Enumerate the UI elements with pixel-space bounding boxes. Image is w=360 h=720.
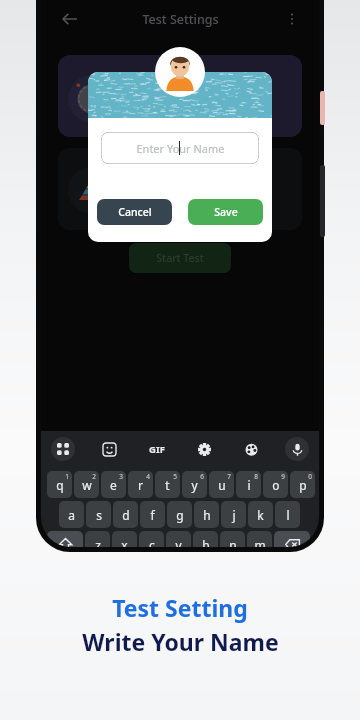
- staticText: q: [56, 477, 64, 493]
- button[interactable]: Set Test Time: [58, 55, 302, 137]
- staticText: Minute: [169, 107, 203, 121]
- staticText: 6: [200, 472, 204, 481]
- button[interactable]: j: [221, 501, 246, 528]
- button[interactable]: Save: [188, 199, 263, 225]
- button[interactable]: Switch keyboard: [51, 437, 75, 461]
- button[interactable]: Enter Your Name: [101, 132, 259, 164]
- staticText: a: [68, 507, 75, 523]
- staticText: 8: [254, 472, 258, 481]
- staticText: y: [191, 477, 198, 493]
- staticText: Test Setting: [112, 592, 248, 623]
- button[interactable]: Settings: [192, 437, 216, 461]
- staticText: x: [121, 537, 128, 547]
- button[interactable]: d: [113, 501, 138, 528]
- button[interactable]: w: [74, 471, 99, 498]
- button[interactable]: q: [47, 471, 72, 498]
- staticText: l: [286, 507, 290, 523]
- button[interactable]: GIF: [144, 436, 170, 462]
- staticText: 1: [65, 472, 69, 481]
- button[interactable]: y: [182, 471, 207, 498]
- button[interactable]: Voice input: [285, 437, 309, 461]
- button[interactable]: l: [275, 501, 300, 528]
- staticText: k: [257, 507, 264, 523]
- button[interactable]: k: [248, 501, 273, 528]
- staticText: 5: [173, 472, 177, 481]
- staticText: Cancel: [118, 205, 152, 219]
- button[interactable]: More options: [279, 6, 305, 32]
- button[interactable]: Stickers: [97, 437, 121, 461]
- button[interactable]: v: [166, 531, 191, 547]
- button[interactable]: Back: [55, 5, 83, 33]
- button[interactable]: [58, 148, 302, 230]
- staticText: g: [176, 507, 184, 523]
- staticText: Write Your Name: [82, 626, 279, 657]
- staticText: i: [247, 477, 251, 493]
- staticText: j: [232, 507, 236, 523]
- staticText: 2: [92, 472, 96, 481]
- staticText: f: [150, 507, 155, 523]
- button[interactable]: i: [236, 471, 261, 498]
- button[interactable]: x: [112, 531, 137, 547]
- button[interactable]: Themes: [239, 437, 263, 461]
- button[interactable]: Backspace: [274, 531, 310, 547]
- button[interactable]: f: [140, 501, 165, 528]
- button[interactable]: n: [220, 531, 245, 547]
- staticText: v: [175, 537, 182, 547]
- staticText: r: [138, 477, 143, 493]
- staticText: c: [149, 537, 155, 547]
- button[interactable]: g: [167, 501, 192, 528]
- staticText: b: [202, 537, 210, 547]
- staticText: GIF: [149, 443, 165, 456]
- staticText: m: [254, 537, 266, 547]
- staticText: 4: [146, 472, 150, 481]
- staticText: p: [299, 477, 307, 493]
- button[interactable]: Minute: [142, 101, 230, 127]
- staticText: Test Settings: [142, 11, 219, 28]
- staticText: Set Test Time: [151, 71, 221, 86]
- staticText: e: [110, 477, 117, 493]
- staticText: z: [95, 537, 101, 547]
- button[interactable]: r: [128, 471, 153, 498]
- staticText: 3: [119, 472, 123, 481]
- button[interactable]: u: [209, 471, 234, 498]
- button[interactable]: Cancel: [97, 199, 172, 225]
- button[interactable]: b: [193, 531, 218, 547]
- button[interactable]: e: [101, 471, 126, 498]
- staticText: h: [203, 507, 211, 523]
- staticText: s: [96, 507, 102, 523]
- button[interactable]: m: [247, 531, 272, 547]
- button[interactable]: Shift: [47, 531, 83, 547]
- staticText: 7: [227, 472, 231, 481]
- button[interactable]: o: [263, 471, 288, 498]
- button[interactable]: s: [86, 501, 111, 528]
- button[interactable]: p: [290, 471, 315, 498]
- staticText: o: [272, 477, 280, 493]
- staticText: u: [218, 477, 226, 493]
- button[interactable]: Start Test: [129, 243, 231, 273]
- staticText: t: [165, 477, 170, 493]
- staticText: Save: [214, 205, 238, 219]
- staticText: n: [229, 537, 237, 547]
- staticText: Enter Your Name: [136, 141, 225, 156]
- button[interactable]: a: [59, 501, 84, 528]
- button[interactable]: z: [85, 531, 110, 547]
- staticText: Start Test: [156, 251, 204, 265]
- button[interactable]: c: [139, 531, 164, 547]
- button[interactable]: t: [155, 471, 180, 498]
- button[interactable]: h: [194, 501, 219, 528]
- staticText: 9: [281, 472, 285, 481]
- staticText: w: [82, 477, 92, 493]
- staticText: 0: [308, 472, 312, 481]
- staticText: d: [122, 507, 130, 523]
